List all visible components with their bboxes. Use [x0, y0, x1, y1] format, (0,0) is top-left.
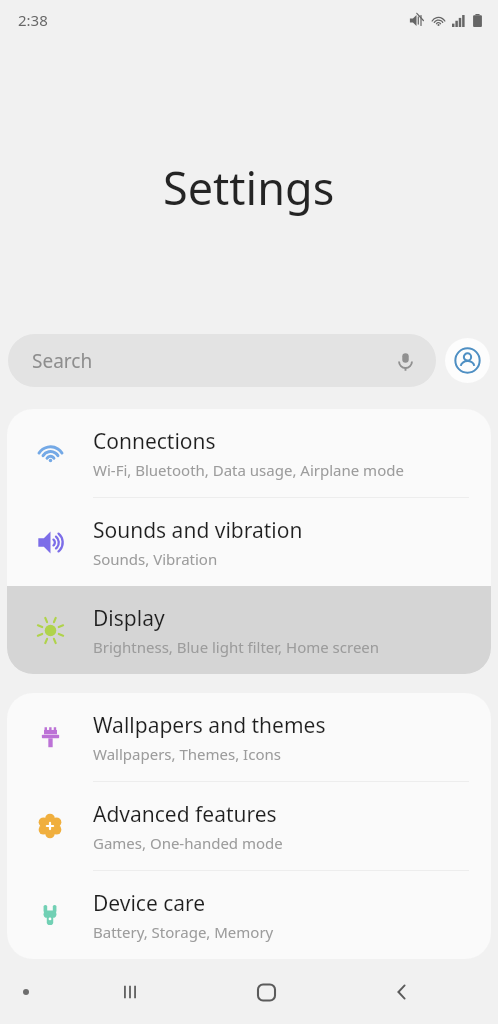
- button[interactable]: Home: [198, 960, 334, 1024]
- staticText: Wi-Fi, Bluetooth, Data usage, Airplane m…: [93, 460, 404, 480]
- staticText: Settings: [163, 157, 335, 218]
- button[interactable]: Wallpapers and themes: [7, 693, 491, 781]
- staticText: Search: [32, 348, 388, 374]
- staticText: Wallpapers and themes: [93, 711, 326, 740]
- staticText: Device care: [93, 889, 206, 918]
- button[interactable]: Account: [445, 338, 490, 383]
- staticText: Advanced features: [93, 800, 277, 829]
- staticText: Brightness, Blue light filter, Home scre…: [93, 637, 380, 657]
- staticText: Connections: [93, 427, 216, 456]
- staticText: Sounds and vibration: [93, 516, 303, 545]
- staticText: Wallpapers, Themes, Icons: [93, 744, 281, 764]
- button[interactable]: Display: [7, 586, 491, 674]
- button[interactable]: Recents: [62, 960, 198, 1024]
- button[interactable]: Advanced features: [7, 782, 491, 870]
- staticText: Games, One-handed mode: [93, 833, 283, 853]
- staticText: 2:38: [18, 10, 48, 30]
- staticText: Battery, Storage, Memory: [93, 922, 274, 942]
- button[interactable]: Back: [334, 960, 470, 1024]
- button[interactable]: Search: [8, 334, 436, 387]
- button[interactable]: Connections: [7, 409, 491, 497]
- staticText: Display: [93, 604, 165, 633]
- button[interactable]: Voice search: [388, 344, 422, 378]
- button[interactable]: Device care: [7, 871, 491, 959]
- button[interactable]: Sounds and vibration: [7, 498, 491, 586]
- staticText: Sounds, Vibration: [93, 549, 218, 569]
